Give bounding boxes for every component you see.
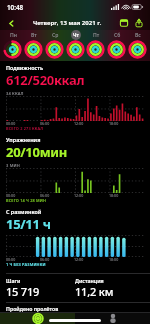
staticText: Четверг, 13 мая 2021 г. xyxy=(33,19,102,27)
button[interactable]: Ср xyxy=(45,30,64,59)
button[interactable]: Пт xyxy=(86,30,105,59)
staticText: Упражнения xyxy=(6,136,41,143)
staticText: 06:00 xyxy=(40,257,50,262)
staticText: 06:00 xyxy=(40,121,50,126)
staticText: 15/11 ч xyxy=(6,215,51,233)
staticText: ВСЕГО 2 273 ККАЛ xyxy=(6,126,44,131)
staticText: 612/520ккал xyxy=(6,71,85,89)
staticText: Пн xyxy=(10,32,17,39)
button[interactable]: Назад xyxy=(5,17,17,29)
button[interactable]: Обзор xyxy=(0,313,75,324)
staticText: 20/10мин xyxy=(6,143,67,161)
staticText: Пт xyxy=(93,32,100,39)
staticText: 3 МИН xyxy=(6,163,20,168)
button[interactable]: Сб xyxy=(107,30,126,59)
staticText: Вт xyxy=(31,32,37,39)
staticText: 06:00 xyxy=(40,193,50,198)
button[interactable]: Поделиться xyxy=(75,313,150,324)
staticText: Сб xyxy=(114,32,121,39)
staticText: С разминкой xyxy=(6,208,42,215)
staticText: Подвижность xyxy=(6,64,44,71)
staticText: 15 719 xyxy=(6,284,40,299)
button[interactable]: Пн xyxy=(3,30,22,59)
staticText: Чт xyxy=(73,32,79,39)
staticText: 1 Ч БЕЗ РАЗМИНКИ xyxy=(6,262,46,267)
staticText: 18:00 xyxy=(109,257,119,262)
button[interactable]: Поделиться xyxy=(133,17,145,29)
staticText: 00:00 xyxy=(6,257,16,262)
button[interactable]: Календарь xyxy=(118,17,130,29)
button[interactable]: Вс xyxy=(128,30,147,59)
staticText: 00:00 xyxy=(6,193,16,198)
staticText: Пройдено пролётов xyxy=(6,305,59,312)
staticText: ВСЕГО 14 Ч 28 МИН xyxy=(6,198,47,203)
staticText: 18:00 xyxy=(109,193,119,198)
staticText: 12:00 xyxy=(74,193,84,198)
staticText: 11,2 км xyxy=(75,284,114,299)
staticText: 18:00 xyxy=(109,121,119,126)
staticText: 12:00 xyxy=(74,121,84,126)
staticText: Дистанция xyxy=(75,277,104,284)
button[interactable]: Чт xyxy=(66,30,85,59)
staticText: Шаги xyxy=(6,277,21,284)
staticText: 34 ККАЛ xyxy=(6,91,24,96)
staticText: 10:48 xyxy=(7,3,24,12)
staticText: Вс xyxy=(135,32,141,39)
staticText: 12:00 xyxy=(74,257,84,262)
staticText: Ср xyxy=(52,32,59,39)
button[interactable]: Вт xyxy=(24,30,43,59)
staticText: 00:00 xyxy=(6,121,16,126)
